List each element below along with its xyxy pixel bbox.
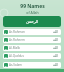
staticText: 99 Names — [20, 3, 45, 10]
staticText: As-Salam — [9, 63, 22, 67]
staticText: 1 — [5, 31, 7, 34]
staticText: 2 — [5, 39, 7, 42]
staticText: الله — [53, 46, 59, 50]
staticText: الله — [53, 30, 59, 34]
staticText: of Allah — [26, 10, 39, 15]
button[interactable]: 3 — [3, 45, 61, 51]
staticText: الله — [53, 63, 59, 67]
staticText: Al-Quddus — [9, 54, 24, 58]
button[interactable]: 2 — [3, 37, 61, 43]
staticText: 3 — [5, 47, 7, 50]
button[interactable]: 1 — [3, 29, 61, 35]
staticText: Ar-Raheem — [9, 38, 25, 42]
staticText: الله — [53, 38, 59, 42]
staticText: الله — [53, 54, 59, 58]
button[interactable]: 5 — [3, 62, 61, 68]
button[interactable]: الرحمن — [3, 16, 61, 27]
staticText: Ar-Rahman — [9, 30, 25, 34]
staticText: Al-Malik — [9, 46, 21, 50]
staticText: 5 — [5, 64, 7, 67]
staticText: 4 — [5, 55, 7, 58]
staticText: الرحمن — [26, 19, 39, 24]
button[interactable]: 4 — [3, 53, 61, 59]
